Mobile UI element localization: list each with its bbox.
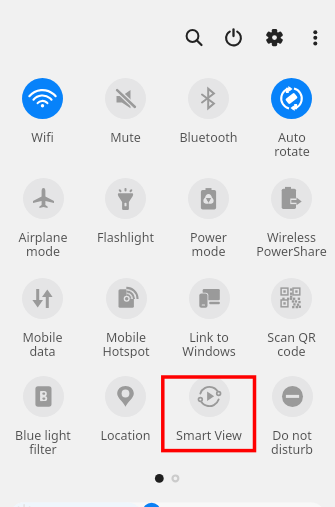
staticText: Bluetooth (179, 129, 238, 146)
button[interactable]: Power (220, 24, 247, 51)
staticText: Wireless PowerShare (256, 229, 327, 258)
button[interactable]: Link to Windows (167, 278, 250, 358)
staticText: Location (100, 427, 151, 444)
staticText: Airplane mode (18, 229, 68, 258)
button[interactable]: Airplane mode (1, 178, 84, 258)
staticText: Flashlight (97, 229, 154, 246)
button[interactable]: Mobile Hotspot (84, 278, 167, 358)
button[interactable]: Mute (84, 78, 167, 158)
staticText: Mute (110, 129, 141, 146)
staticText: Smart View (176, 427, 242, 444)
button[interactable]: Bluetooth (167, 78, 250, 158)
staticText: Mobile Hotspot (102, 329, 150, 358)
staticText: Auto rotate (274, 129, 310, 158)
staticText: Link to Windows (182, 329, 236, 358)
button[interactable]: Scan QR code (250, 278, 333, 358)
button[interactable]: Settings (261, 24, 288, 51)
button[interactable]: Do not disturb (250, 376, 333, 456)
staticText: Scan QR code (267, 329, 316, 358)
button[interactable]: Power mode (167, 178, 250, 258)
button[interactable]: Flashlight (84, 178, 167, 258)
button[interactable]: Location (84, 376, 167, 456)
button[interactable]: Mobile data (1, 278, 84, 358)
button[interactable]: More options (305, 24, 326, 45)
staticText: Wifi (31, 129, 54, 146)
staticText: Blue light filter (15, 427, 71, 456)
button[interactable]: Search (180, 24, 206, 50)
button[interactable]: Wifi (1, 78, 84, 158)
button[interactable]: Brightness (8, 496, 327, 507)
button[interactable]: Blue light filter (1, 376, 84, 456)
staticText: Mobile data (22, 329, 63, 358)
staticText: Do not disturb (271, 427, 313, 456)
button[interactable]: Wireless PowerShare (250, 178, 333, 258)
button[interactable]: Smart View (167, 376, 250, 456)
button[interactable]: Auto rotate (250, 78, 333, 158)
staticText: Power mode (190, 229, 227, 258)
